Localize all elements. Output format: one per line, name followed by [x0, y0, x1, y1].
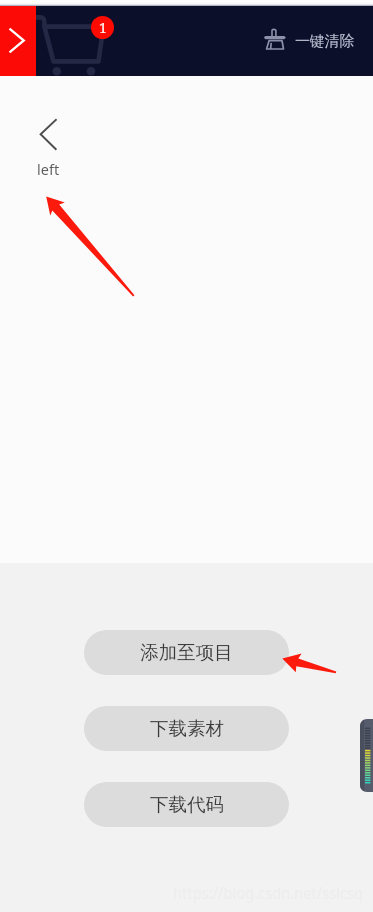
other: left: [37, 119, 57, 150]
staticText: left: [37, 159, 60, 179]
button[interactable]: 下载素材: [84, 706, 289, 751]
button[interactable]: 添加至项目: [84, 630, 289, 675]
button[interactable]: 下载代码: [84, 782, 289, 827]
staticText: 下载素材: [150, 717, 224, 740]
button[interactable]: 一键清除: [264, 6, 373, 76]
button[interactable]: Expand panel: [0, 6, 36, 76]
staticText: 下载代码: [150, 793, 224, 816]
staticText: 一键清除: [295, 32, 355, 51]
button[interactable]: left: [37, 119, 60, 179]
staticText: 添加至项目: [140, 641, 233, 664]
button[interactable]: Level meter: [360, 719, 373, 792]
staticText: 1: [99, 18, 107, 37]
